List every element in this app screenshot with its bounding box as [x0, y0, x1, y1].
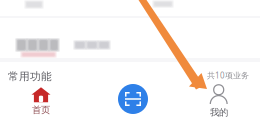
staticText: 共10项业务 — [207, 70, 249, 81]
staticText: 我的 — [210, 107, 228, 118]
staticText: 首页 — [32, 104, 50, 116]
button[interactable]: 我的 — [194, 86, 244, 117]
button[interactable]: Scan — [118, 84, 148, 114]
staticText: 常用功能 — [8, 70, 52, 83]
button[interactable]: 首页 — [16, 86, 66, 117]
